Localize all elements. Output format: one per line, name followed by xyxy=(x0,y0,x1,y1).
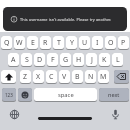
staticText: T xyxy=(57,38,61,48)
staticText: L xyxy=(116,55,120,65)
staticText: U xyxy=(82,38,88,48)
staticText: B xyxy=(75,72,80,82)
staticText: S xyxy=(25,55,29,65)
staticText: Z xyxy=(23,72,28,82)
button[interactable]: X xyxy=(33,70,44,84)
button[interactable]: U xyxy=(79,36,90,50)
staticText: J xyxy=(91,55,93,65)
button[interactable] xyxy=(18,88,32,102)
button[interactable]: A xyxy=(8,53,19,67)
button[interactable]: T xyxy=(53,36,64,50)
button[interactable]: O xyxy=(105,36,116,50)
staticText: W xyxy=(16,38,23,48)
staticText: space xyxy=(58,91,74,99)
button[interactable]: S xyxy=(21,53,32,67)
button[interactable]: D xyxy=(34,53,45,67)
button[interactable]: next xyxy=(99,88,129,102)
staticText: K xyxy=(102,55,107,65)
button[interactable]: V xyxy=(59,70,70,84)
staticText: C xyxy=(49,72,54,82)
button[interactable]: H xyxy=(73,53,84,67)
button[interactable]: N xyxy=(85,70,96,84)
button[interactable] xyxy=(1,70,16,84)
button[interactable]: K xyxy=(99,53,110,67)
button[interactable]: P xyxy=(118,36,129,50)
button[interactable] xyxy=(109,108,122,121)
staticText: A xyxy=(11,55,16,65)
staticText: Q xyxy=(4,38,10,48)
button[interactable]: 123 xyxy=(2,88,16,102)
button[interactable]: Y xyxy=(66,36,77,50)
button[interactable]: M xyxy=(98,70,109,84)
button[interactable]: C xyxy=(46,70,57,84)
button[interactable]: W xyxy=(14,36,25,50)
button[interactable]: F xyxy=(47,53,58,67)
staticText: F xyxy=(51,55,55,65)
button[interactable]: space xyxy=(34,88,97,102)
staticText: R xyxy=(43,38,48,48)
staticText: E xyxy=(31,38,35,48)
staticText: V xyxy=(62,72,67,82)
staticText: I xyxy=(96,38,99,48)
button[interactable]: Z xyxy=(20,70,31,84)
staticText: M xyxy=(100,72,107,82)
staticText: N xyxy=(88,72,94,82)
staticText: O xyxy=(108,38,114,48)
button[interactable] xyxy=(114,70,129,84)
button[interactable]: E xyxy=(27,36,38,50)
button[interactable]: G xyxy=(60,53,71,67)
button[interactable]: B xyxy=(72,70,83,84)
staticText: 123 xyxy=(5,92,13,98)
staticText: G xyxy=(63,55,69,65)
button[interactable]: J xyxy=(86,53,97,67)
staticText: P xyxy=(121,38,126,48)
staticText: Y xyxy=(70,38,74,48)
staticText: D xyxy=(37,55,43,65)
button[interactable]: Q xyxy=(1,36,12,50)
button[interactable]: R xyxy=(40,36,51,50)
button[interactable]: L xyxy=(112,53,123,67)
staticText: H xyxy=(76,55,82,65)
button[interactable] xyxy=(8,108,21,121)
button[interactable]: This username isn't available. Please tr… xyxy=(3,7,127,31)
staticText: X xyxy=(36,72,41,82)
button[interactable]: I xyxy=(92,36,103,50)
staticText: next xyxy=(108,91,120,98)
staticText: This username isn't available. Please tr… xyxy=(20,17,112,22)
